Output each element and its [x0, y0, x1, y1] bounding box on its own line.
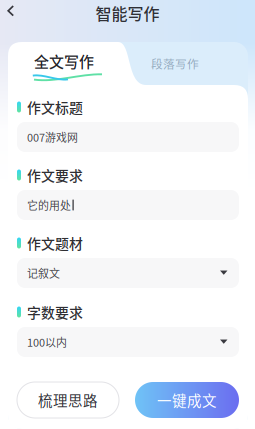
button[interactable]: 一键成文: [135, 382, 239, 418]
button[interactable]: 段落写作: [144, 42, 206, 85]
staticText: 全文写作: [34, 50, 94, 72]
button[interactable]: 记叙文: [17, 258, 239, 288]
button[interactable]: 梳理思路: [17, 382, 119, 418]
staticText: 一键成文: [157, 389, 217, 410]
staticText: 记叙文: [27, 265, 60, 281]
staticText: 007游戏网: [27, 129, 78, 145]
staticText: 作文标题: [27, 97, 83, 117]
staticText: 梳理思路: [38, 389, 98, 410]
staticText: 它的用处: [27, 197, 71, 213]
button[interactable]: 返回: [0, 0, 32, 22]
staticText: 智能写作: [95, 1, 159, 25]
staticText: 作文题材: [27, 233, 83, 253]
staticText: 段落写作: [151, 55, 199, 72]
staticText: 100以内: [27, 334, 67, 350]
staticText: 字数要求: [27, 302, 83, 322]
staticText: 作文要求: [27, 165, 83, 185]
button[interactable]: 全文写作: [34, 52, 98, 70]
button[interactable]: 100以内: [17, 327, 239, 357]
